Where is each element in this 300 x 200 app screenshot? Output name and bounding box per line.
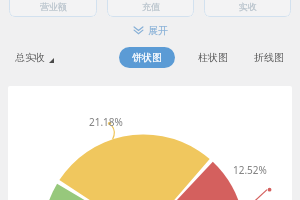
staticText: 展开 <box>148 24 168 37</box>
staticText: 充值 <box>142 1 160 12</box>
button[interactable]: 展开 <box>127 21 174 40</box>
staticText: 折线图 <box>254 51 284 64</box>
staticText: 21.18% <box>89 115 123 129</box>
staticText: 12.52% <box>233 163 267 177</box>
staticText: 营业额 <box>40 1 67 12</box>
button[interactable]: 营业额 <box>9 0 97 17</box>
button[interactable]: 充值 <box>107 0 194 17</box>
button[interactable]: 饼状图 <box>119 47 175 68</box>
staticText: 总实收 <box>15 51 45 64</box>
button[interactable]: 柱状图 <box>195 48 231 67</box>
button[interactable]: 总实收 <box>13 49 56 66</box>
button[interactable]: 折线图 <box>251 48 287 67</box>
button[interactable]: 实收 <box>204 0 291 17</box>
other: 展开 <box>133 26 144 35</box>
staticText: 实收 <box>239 1 257 12</box>
staticText: 饼状图 <box>132 51 162 64</box>
staticText: 柱状图 <box>198 51 228 64</box>
